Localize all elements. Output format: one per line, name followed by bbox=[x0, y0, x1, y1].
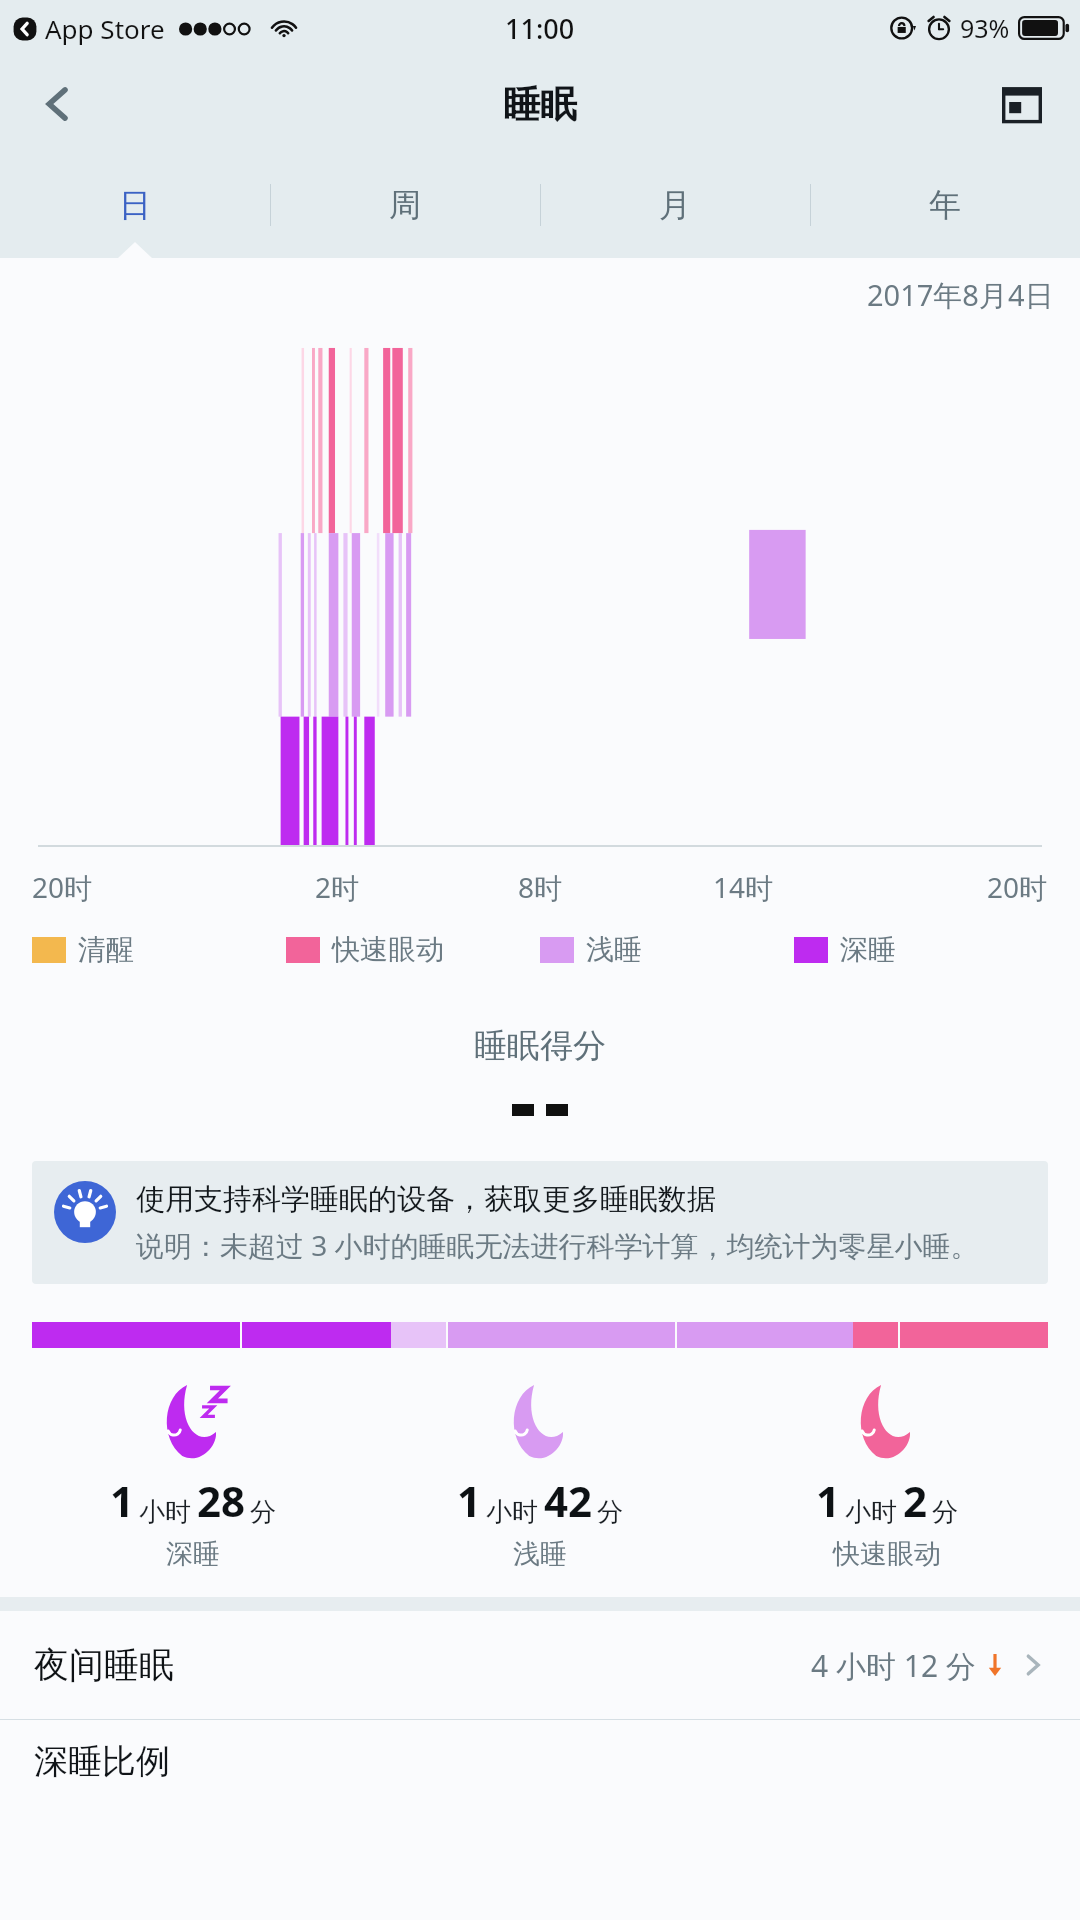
staticText: 2时 bbox=[315, 868, 360, 906]
staticText: 小时 bbox=[486, 1496, 538, 1529]
button[interactable]: 周 bbox=[270, 152, 540, 258]
staticText: App Store bbox=[45, 11, 165, 46]
staticText: 深睡 bbox=[166, 1537, 220, 1571]
button[interactable]: 月 bbox=[540, 152, 810, 258]
button[interactable]: Calendar bbox=[986, 68, 1058, 140]
staticText: 11:00 bbox=[505, 10, 575, 47]
button[interactable]: 年 bbox=[810, 152, 1080, 258]
button[interactable]: 夜间睡眠 bbox=[0, 1611, 1080, 1719]
staticText: 14时 bbox=[713, 868, 774, 906]
staticText: 年 bbox=[929, 185, 961, 225]
staticText: 月 bbox=[659, 185, 691, 225]
staticText: 周 bbox=[389, 185, 421, 225]
staticText: 说明：未超过 3 小时的睡眠无法进行科学计算，均统计为零星小睡。 bbox=[136, 1226, 979, 1264]
staticText: 28 bbox=[197, 1472, 246, 1529]
staticText: 分 bbox=[932, 1496, 958, 1529]
staticText: 清醒 bbox=[78, 932, 134, 967]
staticText: 20时 bbox=[987, 868, 1048, 906]
staticText: 浅睡 bbox=[586, 932, 642, 967]
staticText: 快速眼动 bbox=[332, 932, 444, 967]
staticText: 1 bbox=[816, 1472, 841, 1529]
staticText: 2 bbox=[903, 1472, 928, 1529]
staticText: 1 bbox=[457, 1472, 482, 1529]
staticText: 93% bbox=[960, 11, 1010, 45]
button[interactable]: Back bbox=[22, 68, 94, 140]
button[interactable]: 日 bbox=[0, 152, 270, 258]
staticText: 小时 bbox=[845, 1496, 897, 1529]
button[interactable]: 1 bbox=[366, 1382, 713, 1571]
staticText: 使用支持科学睡眠的设备，获取更多睡眠数据 bbox=[136, 1181, 716, 1218]
staticText: 8时 bbox=[518, 868, 563, 906]
staticText: 20时 bbox=[32, 868, 93, 906]
staticText: 深睡比例 bbox=[34, 1740, 170, 1783]
staticText: 夜间睡眠 bbox=[34, 1643, 174, 1687]
staticText: 小时 bbox=[139, 1496, 191, 1529]
staticText: 快速眼动 bbox=[833, 1537, 941, 1571]
staticText: 2017年8月4日 bbox=[867, 275, 1054, 315]
button[interactable]: 使用支持科学睡眠的设备，获取更多睡眠数据 bbox=[32, 1161, 1048, 1284]
staticText: 深睡 bbox=[840, 932, 896, 967]
staticText: 分 bbox=[250, 1496, 276, 1529]
button[interactable]: 1 bbox=[713, 1382, 1060, 1571]
staticText: 睡眠得分 bbox=[0, 1025, 1080, 1067]
staticText: 睡眠 bbox=[503, 81, 577, 128]
button[interactable]: 1 bbox=[20, 1382, 366, 1571]
staticText: 42 bbox=[544, 1472, 593, 1529]
staticText: 4 小时 12 分 bbox=[811, 1645, 976, 1686]
staticText: 1 bbox=[110, 1472, 135, 1529]
staticText: 浅睡 bbox=[513, 1537, 567, 1571]
staticText: 日 bbox=[119, 185, 151, 225]
staticText: 分 bbox=[597, 1496, 623, 1529]
